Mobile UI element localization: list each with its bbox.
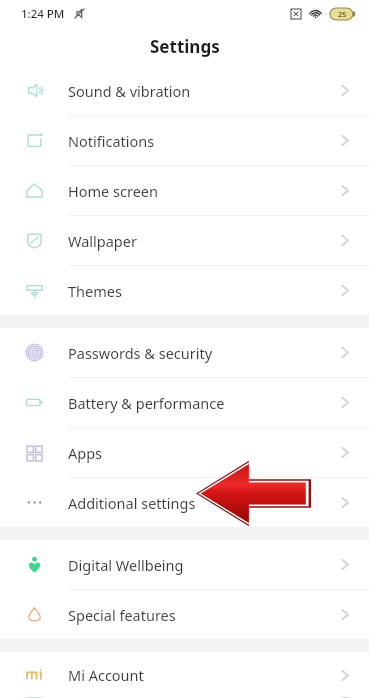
staticText: Additional settings [68,493,340,513]
staticText: 1:24 PM [21,6,65,22]
staticText: Mi Account [68,665,340,685]
button[interactable]: Additional settings [0,478,369,527]
staticText: Digital Wellbeing [68,555,340,575]
staticText: Sound & vibration [68,81,340,101]
button[interactable]: Notifications [0,116,369,166]
staticText: Passwords & security [68,343,340,363]
staticText: Home screen [68,181,340,201]
button[interactable]: Battery & performance [0,378,369,428]
button[interactable]: Mi Account [0,652,369,698]
button[interactable]: Apps [0,428,369,478]
button[interactable]: Wallpaper [0,216,369,266]
other: Pointer to Additional settings [196,458,311,529]
staticText: Special features [68,605,340,625]
button[interactable]: Themes [0,266,369,315]
staticText: Settings [150,35,220,58]
staticText: Wallpaper [68,231,340,251]
staticText: Battery & performance [68,393,340,413]
staticText: Notifications [68,131,340,151]
staticText: 25 [338,9,347,19]
button[interactable]: Sound & vibration [0,66,369,116]
button[interactable]: Special features [0,590,369,639]
button[interactable]: Home screen [0,166,369,216]
staticText: Apps [68,443,340,463]
staticText: Themes [68,281,340,301]
button[interactable]: Passwords & security [0,328,369,378]
button[interactable]: Digital Wellbeing [0,540,369,590]
